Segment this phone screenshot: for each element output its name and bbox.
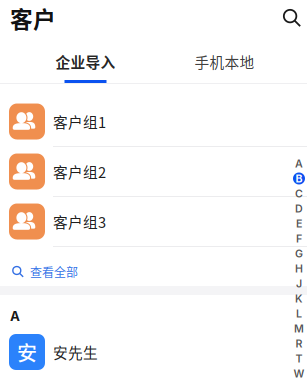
staticText: A [295, 157, 303, 170]
button[interactable]: W [292, 366, 306, 379]
staticText: 企业导入 [55, 51, 115, 72]
button[interactable]: B [292, 171, 306, 186]
button[interactable]: M [292, 321, 306, 336]
button[interactable]: D [292, 201, 306, 216]
staticText: C [295, 187, 303, 200]
button[interactable]: 客户组3 [0, 197, 307, 247]
button[interactable]: J [292, 276, 306, 291]
button[interactable]: 安 [0, 327, 307, 377]
staticText: 安先生 [53, 341, 98, 363]
button[interactable]: 企业导入 [16, 38, 155, 83]
staticText: E [296, 217, 302, 230]
staticText: B [295, 172, 302, 185]
staticText: W [293, 367, 304, 379]
staticText: F [296, 232, 302, 245]
button[interactable]: A [292, 156, 306, 171]
staticText: 查看全部 [30, 263, 78, 280]
button[interactable]: 客户组1 [0, 97, 307, 147]
button[interactable]: L [292, 306, 306, 321]
staticText: J [296, 277, 302, 290]
staticText: M [294, 322, 304, 335]
staticText: R [295, 337, 302, 350]
staticText: A [10, 308, 20, 324]
staticText: G [295, 247, 303, 260]
staticText: K [295, 292, 303, 305]
staticText: 安 [17, 337, 37, 366]
button[interactable]: R [292, 336, 306, 351]
staticText: L [296, 307, 302, 320]
button[interactable]: Search [279, 5, 305, 31]
button[interactable]: H [292, 261, 306, 276]
staticText: 客户组3 [53, 211, 106, 232]
button[interactable]: T [292, 351, 306, 366]
staticText: H [295, 262, 303, 275]
staticText: 客户组1 [53, 111, 106, 132]
button[interactable]: 客户组2 [0, 147, 307, 197]
staticText: 客户组2 [53, 161, 106, 182]
button[interactable]: C [292, 186, 306, 201]
staticText: 客户 [10, 2, 56, 34]
staticText: T [295, 352, 302, 365]
button[interactable]: G [292, 246, 306, 261]
button[interactable]: 查看全部 [0, 247, 307, 286]
button[interactable]: 手机本地 [155, 38, 294, 83]
staticText: 手机本地 [194, 51, 254, 72]
staticText: D [295, 202, 303, 215]
button[interactable]: F [292, 231, 306, 246]
button[interactable]: K [292, 291, 306, 306]
button[interactable]: E [292, 216, 306, 231]
